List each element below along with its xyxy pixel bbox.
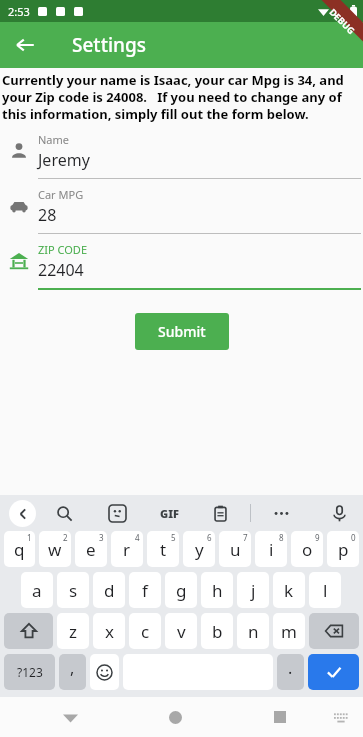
button[interactable]: h bbox=[201, 572, 233, 608]
button[interactable]: Car MPG bbox=[0, 187, 363, 242]
button[interactable]: g bbox=[165, 572, 197, 608]
staticText: 4 bbox=[135, 532, 140, 543]
button[interactable]: ZIP CODE bbox=[0, 242, 363, 298]
staticText: z bbox=[69, 620, 77, 643]
button[interactable]: Recents bbox=[260, 697, 300, 737]
button[interactable]: f bbox=[129, 572, 161, 608]
staticText: j bbox=[251, 579, 256, 602]
staticText: DEBUG bbox=[327, 6, 358, 36]
button[interactable]: m bbox=[273, 613, 305, 649]
staticText: v bbox=[177, 620, 186, 643]
staticText: x bbox=[105, 620, 114, 643]
button[interactable]: z bbox=[57, 613, 89, 649]
staticText: , bbox=[70, 657, 75, 679]
button[interactable]: Enter bbox=[308, 654, 359, 690]
staticText: b bbox=[212, 620, 223, 643]
staticText: 5 bbox=[171, 532, 176, 543]
button[interactable]: u bbox=[219, 531, 251, 567]
staticText: l bbox=[323, 579, 328, 602]
button[interactable]: t bbox=[147, 531, 179, 567]
button[interactable]: Submit bbox=[135, 313, 229, 350]
button[interactable]: k bbox=[273, 572, 305, 608]
button[interactable]: . bbox=[277, 654, 304, 690]
button[interactable]: Close toolbar bbox=[9, 500, 36, 527]
staticText: Name bbox=[38, 132, 70, 147]
staticText: Settings bbox=[72, 32, 146, 58]
staticText: e bbox=[86, 538, 96, 561]
staticText: f bbox=[142, 579, 148, 602]
staticText: Car MPG bbox=[38, 187, 84, 202]
button[interactable]: Back bbox=[50, 697, 90, 737]
staticText: w bbox=[48, 538, 62, 561]
staticText: ZIP CODE bbox=[38, 242, 88, 257]
staticText: u bbox=[230, 538, 241, 561]
staticText: t bbox=[160, 538, 167, 561]
button[interactable]: i bbox=[255, 531, 287, 567]
staticText: Jeremy bbox=[38, 149, 90, 171]
button[interactable]: Back bbox=[5, 25, 45, 65]
staticText: 6 bbox=[207, 532, 212, 543]
button[interactable]: c bbox=[129, 613, 161, 649]
button[interactable]: r bbox=[111, 531, 143, 567]
staticText: 9 bbox=[315, 532, 320, 543]
button[interactable]: s bbox=[57, 572, 89, 608]
staticText: h bbox=[212, 579, 223, 602]
button[interactable]: o bbox=[291, 531, 323, 567]
button[interactable]: e bbox=[75, 531, 107, 567]
button[interactable]: d bbox=[93, 572, 125, 608]
button[interactable]: j bbox=[237, 572, 269, 608]
staticText: Currently your name is Isaac, your car M… bbox=[2, 71, 361, 123]
staticText: Submit bbox=[158, 322, 206, 341]
staticText: r bbox=[123, 538, 131, 561]
button[interactable]: Clipboard bbox=[208, 501, 232, 525]
button[interactable]: More options bbox=[269, 501, 293, 525]
staticText: g bbox=[176, 579, 187, 602]
staticText: GIF bbox=[160, 506, 179, 521]
button[interactable]: y bbox=[183, 531, 215, 567]
staticText: a bbox=[32, 579, 42, 602]
staticText: 22404 bbox=[38, 259, 84, 281]
staticText: 2 bbox=[63, 532, 68, 543]
staticText: m bbox=[281, 620, 297, 643]
button[interactable]: Home bbox=[155, 697, 195, 737]
staticText: q bbox=[14, 538, 25, 561]
button[interactable]: v bbox=[165, 613, 197, 649]
button[interactable]: n bbox=[237, 613, 269, 649]
button[interactable]: p bbox=[327, 531, 359, 567]
staticText: 8 bbox=[279, 532, 284, 543]
staticText: y bbox=[195, 538, 204, 561]
button[interactable]: Emoji bbox=[90, 654, 119, 690]
staticText: . bbox=[288, 657, 293, 679]
staticText: ?123 bbox=[17, 664, 43, 680]
button[interactable]: Stickers bbox=[105, 501, 129, 525]
staticText: 3 bbox=[99, 532, 104, 543]
staticText: p bbox=[338, 538, 349, 561]
button[interactable]: Search bbox=[52, 501, 76, 525]
button[interactable]: GIF bbox=[158, 504, 181, 523]
staticText: o bbox=[302, 538, 313, 561]
staticText: s bbox=[69, 579, 78, 602]
button[interactable]: x bbox=[93, 613, 125, 649]
button[interactable]: w bbox=[39, 531, 71, 567]
staticText: 28 bbox=[38, 204, 57, 226]
button[interactable]: Backspace bbox=[309, 613, 359, 649]
button[interactable]: Shift bbox=[4, 613, 53, 649]
staticText: k bbox=[284, 579, 294, 602]
button[interactable]: Name bbox=[0, 132, 363, 187]
button[interactable]: ?123 bbox=[4, 654, 55, 690]
button[interactable]: Switch keyboard bbox=[325, 701, 357, 733]
button[interactable]: q bbox=[4, 531, 35, 567]
button[interactable]: , bbox=[59, 654, 86, 690]
button[interactable]: l bbox=[309, 572, 341, 608]
staticText: d bbox=[104, 579, 115, 602]
staticText: c bbox=[141, 620, 150, 643]
staticText: 7 bbox=[243, 532, 248, 543]
staticText: 2:53 bbox=[8, 4, 30, 19]
staticText: 0 bbox=[351, 532, 356, 543]
button[interactable]: b bbox=[201, 613, 233, 649]
button[interactable]: Voice input bbox=[327, 501, 351, 525]
staticText: i bbox=[269, 538, 274, 561]
staticText: 1 bbox=[27, 532, 32, 543]
button[interactable]: a bbox=[21, 572, 53, 608]
